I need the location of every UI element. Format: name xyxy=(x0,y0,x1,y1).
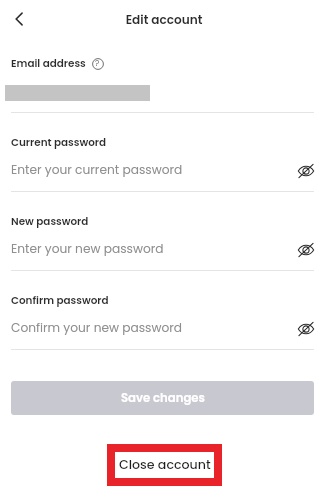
button[interactable]: Show password xyxy=(297,241,315,259)
staticText: Confirm your new password xyxy=(11,319,183,336)
button[interactable]: Show password xyxy=(297,320,315,338)
button[interactable]: Help xyxy=(91,57,104,70)
button[interactable]: Back xyxy=(8,8,30,30)
button[interactable]: Close account xyxy=(115,452,214,478)
staticText: Email address xyxy=(11,56,86,71)
staticText: Enter your current password xyxy=(11,161,183,178)
button[interactable]: Save changes xyxy=(11,381,314,415)
staticText: ? xyxy=(95,57,100,68)
staticText: Current password xyxy=(11,135,107,150)
staticText: New password xyxy=(11,214,89,229)
button[interactable]: Show password xyxy=(297,162,315,180)
staticText: Close account xyxy=(119,456,211,474)
staticText: Enter your new password xyxy=(11,240,164,257)
staticText: Save changes xyxy=(121,390,205,406)
staticText: Edit account xyxy=(2,11,324,28)
staticText: Confirm password xyxy=(11,293,109,308)
